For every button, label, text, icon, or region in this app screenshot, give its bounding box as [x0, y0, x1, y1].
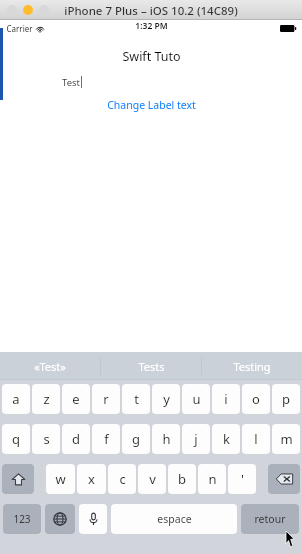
button[interactable]: y: [152, 384, 180, 414]
button[interactable]: h: [152, 424, 180, 454]
button[interactable]: g: [122, 424, 150, 454]
staticText: p: [282, 390, 290, 408]
staticText: k: [223, 430, 230, 448]
staticText: Tests: [138, 359, 165, 374]
button[interactable]: w: [46, 464, 75, 494]
button[interactable]: Minimize: [23, 5, 33, 15]
button[interactable]: «Test»: [0, 352, 100, 380]
staticText: o: [252, 390, 260, 408]
button[interactable]: Backspace: [268, 464, 300, 494]
staticText: iPhone 7 Plus – iOS 10.2 (14C89): [64, 3, 238, 19]
staticText: Test: [62, 76, 80, 89]
staticText: j: [194, 430, 198, 448]
staticText: 1:32 PM: [135, 20, 168, 32]
button[interactable]: Testing: [202, 352, 302, 380]
staticText: g: [132, 430, 140, 448]
staticText: Testing: [233, 359, 271, 374]
staticText: e: [72, 390, 80, 408]
button[interactable]: k: [212, 424, 240, 454]
staticText: n: [208, 470, 217, 488]
staticText: u: [192, 390, 201, 408]
staticText: retour: [254, 512, 286, 526]
staticText: l: [254, 430, 258, 448]
button[interactable]: o: [242, 384, 270, 414]
staticText: d: [72, 430, 80, 448]
button[interactable]: a: [2, 384, 30, 414]
staticText: y: [163, 390, 170, 408]
staticText: s: [43, 430, 50, 448]
staticText: espace: [157, 512, 192, 526]
button[interactable]: c: [108, 464, 136, 494]
staticText: «Test»: [34, 359, 66, 374]
button[interactable]: b: [168, 464, 196, 494]
button[interactable]: q: [2, 424, 30, 454]
button[interactable]: m: [272, 424, 300, 454]
staticText: ': [241, 470, 244, 488]
button[interactable]: Change keyboard language: [45, 504, 75, 534]
staticText: a: [12, 390, 20, 408]
button[interactable]: v: [138, 464, 166, 494]
button[interactable]: z: [32, 384, 60, 414]
button[interactable]: n: [198, 464, 226, 494]
button[interactable]: ': [228, 464, 256, 494]
staticText: c: [119, 470, 126, 488]
button[interactable]: Shift: [2, 464, 34, 494]
staticText: v: [149, 470, 156, 488]
button[interactable]: p: [272, 384, 300, 414]
staticText: t: [134, 390, 139, 408]
button[interactable]: Dictation: [79, 504, 107, 534]
staticText: z: [43, 390, 50, 408]
staticText: m: [280, 430, 293, 448]
button[interactable]: 123: [3, 504, 41, 534]
staticText: Carrier: [6, 23, 33, 34]
button[interactable]: Tests: [101, 352, 201, 380]
staticText: q: [12, 430, 20, 448]
staticText: b: [178, 470, 186, 488]
button[interactable]: d: [62, 424, 90, 454]
button[interactable]: l: [242, 424, 270, 454]
staticText: Swift Tuto: [122, 48, 181, 65]
button[interactable]: retour: [241, 504, 299, 534]
button[interactable]: e: [62, 384, 90, 414]
button[interactable]: espace: [111, 504, 237, 534]
staticText: f: [104, 430, 109, 448]
button[interactable]: Change Label text: [101, 96, 202, 114]
button[interactable]: f: [92, 424, 120, 454]
staticText: r: [103, 390, 109, 408]
button[interactable]: t: [122, 384, 150, 414]
staticText: 123: [13, 512, 31, 526]
staticText: Change Label text: [107, 98, 196, 112]
button[interactable]: s: [32, 424, 60, 454]
button[interactable]: i: [212, 384, 240, 414]
staticText: w: [55, 470, 66, 488]
staticText: h: [162, 430, 171, 448]
staticText: i: [224, 390, 228, 408]
button[interactable]: u: [182, 384, 210, 414]
button[interactable]: x: [77, 464, 106, 494]
staticText: x: [88, 470, 95, 488]
button[interactable]: r: [92, 384, 120, 414]
button[interactable]: j: [182, 424, 210, 454]
